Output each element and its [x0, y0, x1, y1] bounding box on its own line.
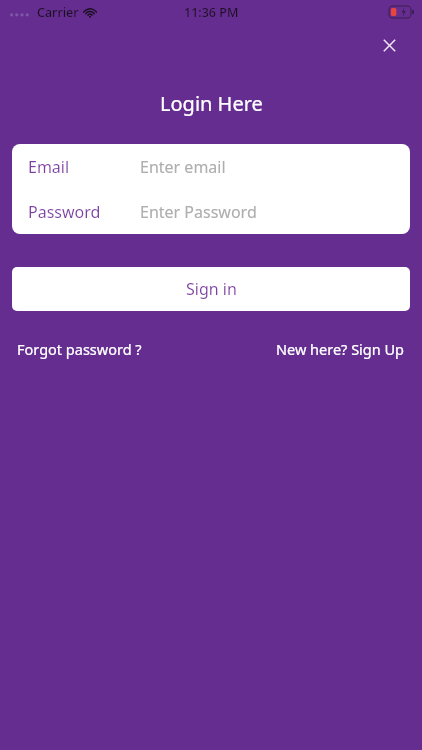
button[interactable]: Sign in	[12, 267, 410, 311]
button[interactable]: Close	[374, 30, 404, 60]
staticText: Carrier	[37, 4, 79, 21]
staticText: Enter email	[140, 156, 226, 178]
staticText: Email	[28, 156, 70, 178]
staticText: Enter Password	[140, 201, 257, 223]
staticText: Login Here	[160, 90, 263, 117]
staticText: Forgot password ?	[17, 339, 142, 359]
button[interactable]: Forgot password ?	[17, 337, 142, 361]
button[interactable]: New here? Sign Up	[276, 337, 405, 361]
staticText: Password	[28, 201, 101, 223]
button[interactable]: Email	[12, 144, 410, 189]
staticText: New here? Sign Up	[276, 339, 405, 359]
staticText: 11:36 PM	[184, 4, 239, 21]
button[interactable]: Password	[12, 189, 410, 234]
staticText: Sign in	[186, 278, 237, 300]
